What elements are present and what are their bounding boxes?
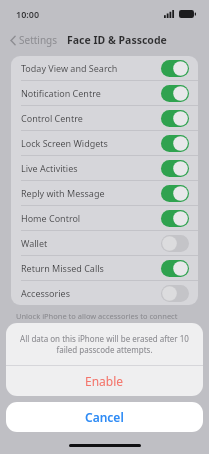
- button[interactable]: On: [161, 135, 189, 152]
- button[interactable]: On: [161, 210, 189, 227]
- staticText: Home Control: [21, 212, 161, 224]
- staticText: Control Centre: [21, 112, 161, 124]
- button[interactable]: Return Missed Calls: [11, 256, 198, 280]
- staticText: Return Missed Calls: [21, 262, 161, 274]
- staticText: Settings: [19, 33, 58, 47]
- staticText: Reply with Message: [21, 187, 161, 199]
- staticText: Live Activities: [21, 162, 161, 174]
- button[interactable]: On: [161, 160, 189, 177]
- button[interactable]: On: [161, 185, 189, 202]
- staticText: Enable: [85, 373, 124, 389]
- button[interactable]: Notification Centre: [11, 81, 198, 105]
- staticText: 10:00: [16, 8, 40, 20]
- button[interactable]: Lock Screen Widgets: [11, 131, 198, 155]
- button[interactable]: Enable: [6, 366, 203, 396]
- button[interactable]: Cancel: [6, 402, 203, 432]
- button[interactable]: Accessories: [11, 281, 198, 305]
- staticText: Notification Centre: [21, 87, 161, 99]
- staticText: Cancel: [85, 409, 124, 425]
- button[interactable]: Off: [161, 235, 189, 252]
- staticText: Wallet: [21, 237, 161, 249]
- staticText: Accessories: [21, 287, 161, 299]
- button[interactable]: Reply with Message: [11, 181, 198, 205]
- button[interactable]: Live Activities: [11, 156, 198, 180]
- button[interactable]: Today View and Search: [11, 56, 198, 80]
- button[interactable]: Home Control: [11, 206, 198, 230]
- button[interactable]: On: [161, 85, 189, 102]
- staticText: Face ID & Passcode: [67, 33, 167, 47]
- button[interactable]: Off: [161, 285, 189, 302]
- button[interactable]: Settings: [7, 31, 61, 49]
- staticText: Unlock iPhone to allow accessories to co…: [16, 311, 193, 341]
- staticText: Today View and Search: [21, 62, 161, 74]
- button[interactable]: Control Centre: [11, 106, 198, 130]
- button[interactable]: Wallet: [11, 231, 198, 255]
- staticText: All data on this iPhone will be erased a…: [20, 333, 189, 355]
- staticText: Lock Screen Widgets: [21, 137, 161, 149]
- button[interactable]: On: [161, 260, 189, 277]
- button[interactable]: On: [161, 60, 189, 77]
- button[interactable]: On: [161, 110, 189, 127]
